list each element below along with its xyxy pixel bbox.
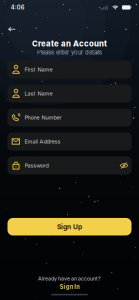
button[interactable]: Back [6,25,19,34]
button[interactable]: Show password [116,156,131,174]
button[interactable]: Sign Up [7,218,131,235]
staticText: 4:06 [11,4,25,11]
staticText: Please enter your details [37,49,102,56]
staticText: First Name [24,66,52,73]
staticText: Sign [60,284,73,290]
staticText: Password [24,162,48,169]
staticText: In [74,284,79,290]
staticText: Already have an account? [38,275,101,282]
staticText: Phone Number [24,114,61,121]
staticText: Create an Account [32,39,107,48]
button[interactable]: Sign [60,284,79,290]
staticText: Email Address [24,138,60,145]
staticText: Last Name [24,90,52,97]
staticText: Sign Up [57,223,82,231]
